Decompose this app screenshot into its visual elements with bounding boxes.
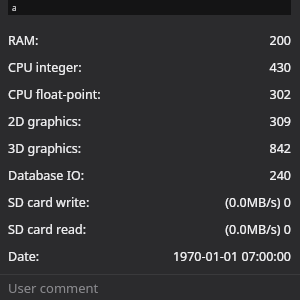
staticText: 309 — [269, 113, 291, 130]
staticText: 842 — [269, 140, 291, 157]
button[interactable]: SD card read: — [0, 216, 300, 243]
staticText: CPU float-point: — [8, 86, 101, 103]
staticText: 2D graphics: — [8, 113, 82, 130]
button[interactable]: User comment — [0, 275, 300, 300]
staticText: 200 — [269, 32, 291, 49]
staticText: 430 — [269, 59, 291, 76]
button[interactable]: RAM: — [0, 27, 300, 54]
staticText: (0.0MB/s) 0 — [225, 194, 291, 211]
staticText: 240 — [269, 167, 291, 184]
staticText: a — [12, 2, 17, 13]
staticText: Database IO: — [8, 167, 85, 184]
staticText: RAM: — [8, 32, 39, 49]
staticText: 3D graphics: — [8, 140, 82, 157]
button[interactable]: Title bar — [8, 0, 291, 15]
button[interactable]: CPU integer: — [0, 54, 300, 81]
staticText: SD card read: — [8, 221, 87, 238]
staticText: 1970-01-01 07:00:00 — [172, 248, 291, 265]
button[interactable]: CPU float-point: — [0, 81, 300, 108]
button[interactable]: 2D graphics: — [0, 108, 300, 135]
staticText: SD card write: — [8, 194, 90, 211]
button[interactable]: Date: — [0, 243, 300, 270]
staticText: Date: — [8, 248, 40, 265]
staticText: CPU integer: — [8, 59, 82, 76]
button[interactable]: 3D graphics: — [0, 135, 300, 162]
button[interactable]: Database IO: — [0, 162, 300, 189]
button[interactable]: SD card write: — [0, 189, 300, 216]
staticText: 302 — [269, 86, 291, 103]
staticText: User comment — [8, 279, 99, 297]
staticText: (0.0MB/s) 0 — [225, 221, 291, 238]
